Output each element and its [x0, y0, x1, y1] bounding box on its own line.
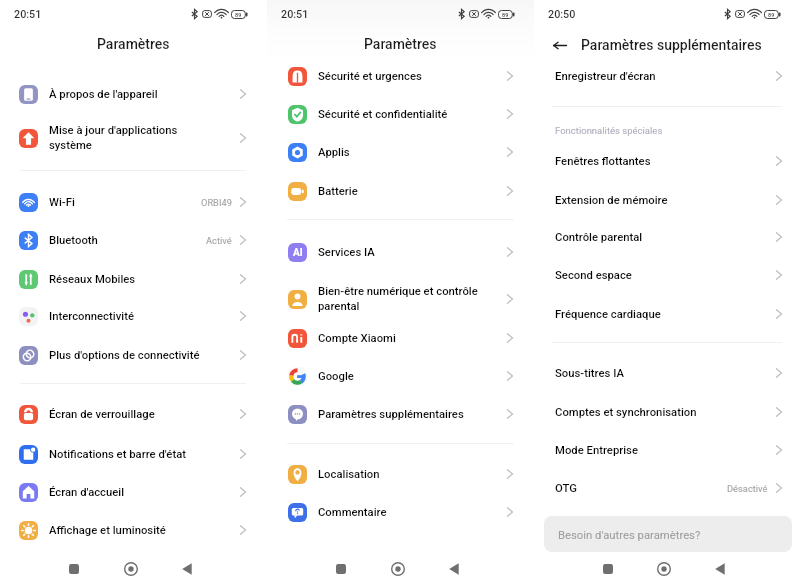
staticText: Sécurité et urgences [318, 70, 422, 83]
button[interactable]: Fenêtres flottantes [534, 145, 800, 177]
staticText: Comptes et synchronisation [555, 406, 697, 419]
button[interactable]: Bluetooth [0, 224, 267, 256]
staticText: 89 [502, 12, 509, 18]
button[interactable]: Écran de verrouillage [0, 398, 267, 430]
staticText: ORBI49 [201, 197, 232, 208]
button[interactable]: Wi-Fi [0, 186, 267, 218]
button[interactable]: Google [267, 360, 534, 392]
staticText: 20:51 [281, 8, 309, 21]
button[interactable]: Mise à jour d'applications système [0, 118, 267, 158]
staticText: Mode Entreprise [555, 444, 638, 457]
staticText: Écran d'accueil [49, 486, 125, 499]
button[interactable]: Plus d'options de connectivité [0, 339, 267, 371]
staticText: Sous-titres IA [555, 367, 624, 380]
staticText: Second espace [555, 269, 632, 282]
button[interactable]: Back [441, 556, 467, 582]
staticText: Bluetooth [49, 234, 98, 247]
button[interactable]: Home [651, 556, 677, 582]
button[interactable]: Sous-titres IA [534, 357, 800, 389]
button[interactable]: Besoin d'autres paramètres? [544, 516, 792, 552]
button[interactable]: Extension de mémoire [534, 184, 800, 216]
staticText: 89 [768, 12, 775, 18]
staticText: Wi-Fi [49, 196, 75, 209]
button[interactable]: Recents [328, 556, 354, 582]
staticText: Mise à jour d'applications système [49, 124, 191, 152]
button[interactable]: Mode Entreprise [534, 434, 800, 466]
button[interactable]: Sécurité et urgences [267, 60, 534, 92]
button[interactable]: Notifications et barre d'état [0, 438, 267, 470]
staticText: Fenêtres flottantes [555, 155, 651, 168]
button[interactable]: Contrôle parental [534, 221, 800, 253]
staticText: Compte Xiaomi [318, 332, 396, 345]
button[interactable]: Recents [595, 556, 621, 582]
button[interactable]: Recents [61, 556, 87, 582]
staticText: Extension de mémoire [555, 194, 668, 207]
staticText: Contrôle parental [555, 231, 643, 244]
button[interactable]: À propos de l'appareil [0, 78, 267, 110]
staticText: 89 [235, 12, 242, 18]
staticText: Désactivé [727, 483, 768, 494]
button[interactable]: Interconnectivité [0, 300, 267, 332]
staticText: Écran de verrouillage [49, 408, 155, 421]
staticText: OTG [555, 482, 577, 495]
staticText: Notifications et barre d'état [49, 448, 187, 461]
button[interactable]: Home [118, 556, 144, 582]
staticText: Plus d'options de connectivité [49, 349, 200, 362]
staticText: Affichage et luminosité [49, 524, 166, 537]
staticText: Commentaire [318, 506, 387, 519]
button[interactable]: Paramètres supplémentaires [267, 398, 534, 430]
staticText: Paramètres supplémentaires [318, 408, 464, 421]
button[interactable]: Localisation [267, 458, 534, 490]
button[interactable]: Batterie [267, 175, 534, 207]
button[interactable]: Comptes et synchronisation [534, 396, 800, 428]
staticText: Bien-être numérique et contrôle parental [318, 285, 488, 313]
staticText: Paramètres supplémentaires [581, 37, 762, 53]
button[interactable]: Réseaux Mobiles [0, 263, 267, 295]
button[interactable]: Fréquence cardiaque [534, 298, 800, 330]
staticText: Fréquence cardiaque [555, 308, 661, 321]
button[interactable]: Écran d'accueil [0, 476, 267, 508]
button[interactable]: Bien-être numérique et contrôle parental [267, 279, 534, 319]
staticText: Enregistreur d'écran [555, 70, 656, 83]
staticText: Localisation [318, 468, 380, 481]
button[interactable]: Commentaire [267, 496, 534, 528]
staticText: AI [293, 247, 303, 259]
staticText: 20:51 [14, 8, 42, 21]
button[interactable]: Applis [267, 136, 534, 168]
button[interactable]: Home [385, 556, 411, 582]
staticText: Fonctionnalités spéciales [555, 125, 663, 136]
button[interactable]: Back [707, 556, 733, 582]
button[interactable]: Back [549, 34, 571, 56]
staticText: Interconnectivité [49, 310, 134, 323]
staticText: 20:50 [548, 8, 576, 21]
staticText: Google [318, 370, 354, 383]
staticText: Réseaux Mobiles [49, 273, 136, 286]
staticText: À propos de l'appareil [49, 88, 158, 101]
staticText: Activé [206, 235, 232, 246]
staticText: Sécurité et confidentialité [318, 108, 448, 121]
button[interactable]: Back [174, 556, 200, 582]
button[interactable]: Enregistreur d'écran [534, 60, 800, 92]
button[interactable]: Compte Xiaomi [267, 322, 534, 354]
button[interactable]: Second espace [534, 259, 800, 291]
button[interactable]: AI [267, 236, 534, 268]
staticText: Paramètres [97, 36, 170, 52]
button[interactable]: Affichage et luminosité [0, 514, 267, 546]
staticText: Besoin d'autres paramètres? [558, 529, 701, 542]
button[interactable]: OTG [534, 472, 800, 504]
staticText: Paramètres [364, 36, 437, 52]
button[interactable]: Sécurité et confidentialité [267, 98, 534, 130]
staticText: Applis [318, 146, 350, 159]
staticText: Batterie [318, 185, 358, 198]
staticText: Services IA [318, 246, 375, 259]
